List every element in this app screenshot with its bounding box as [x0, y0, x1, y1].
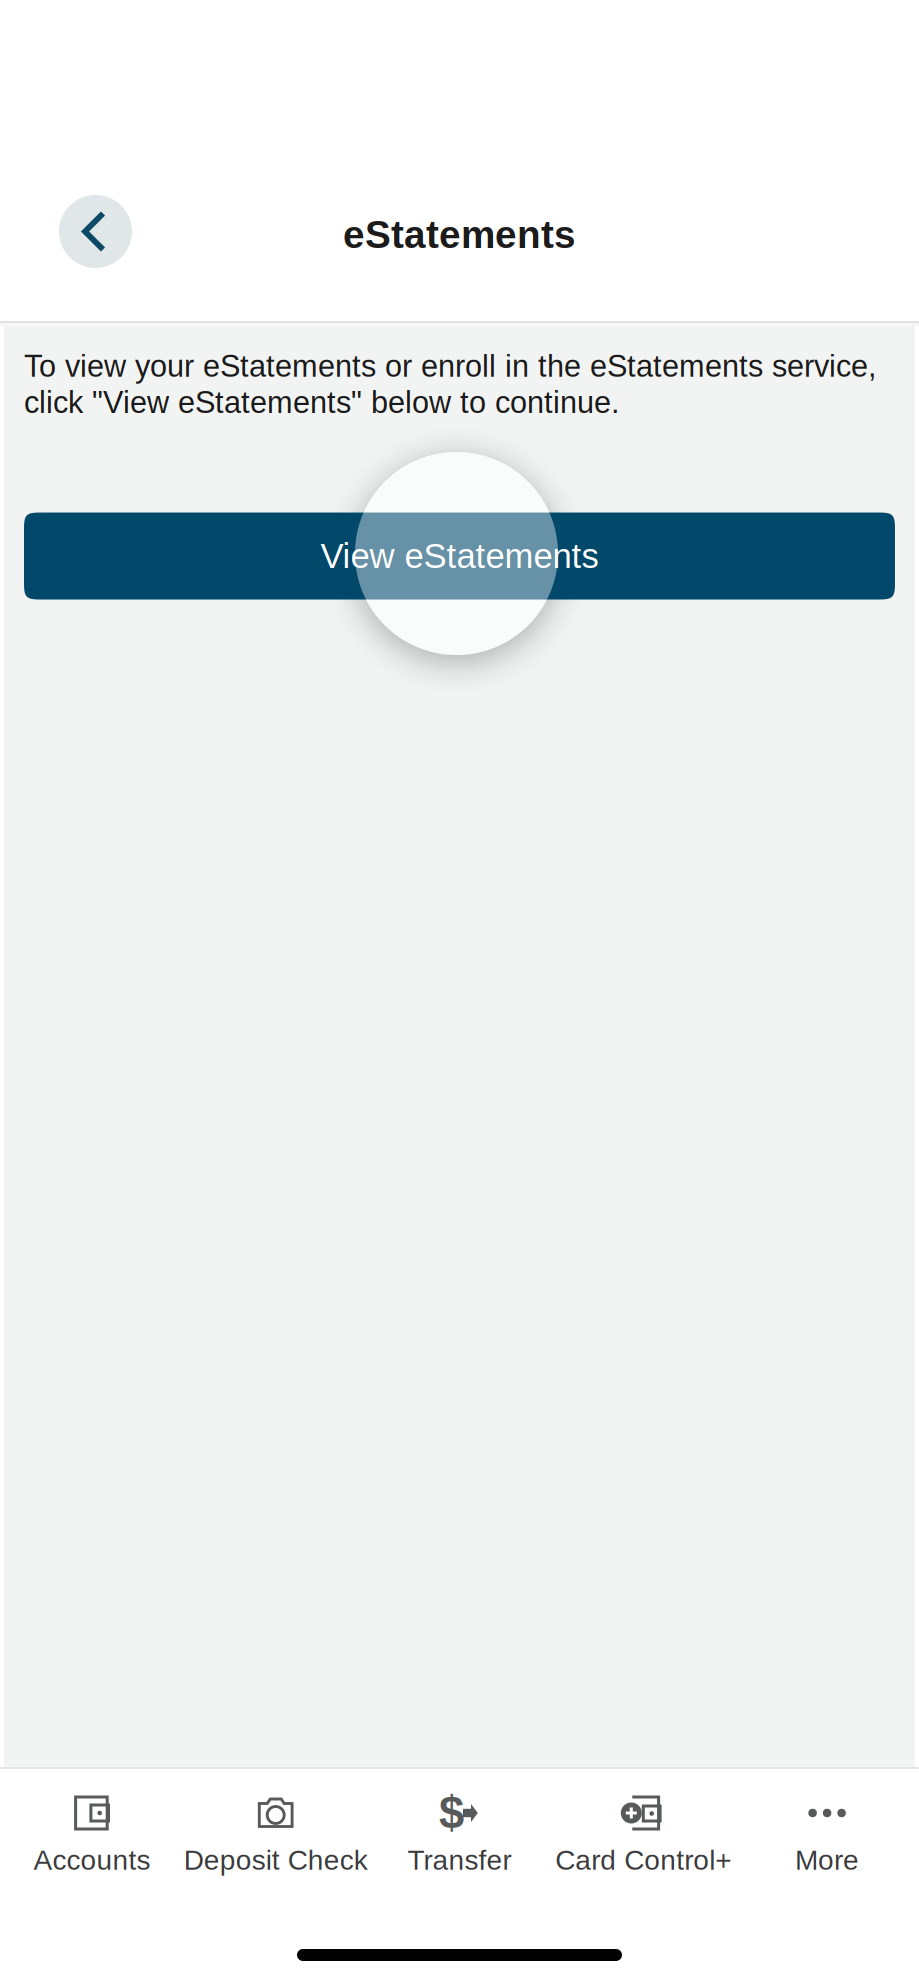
- button[interactable]: Accounts: [0, 1795, 184, 1873]
- staticText: Card Control+: [555, 1844, 731, 1876]
- staticText: Accounts: [33, 1844, 150, 1876]
- button[interactable]: View eStatements: [24, 512, 895, 599]
- staticText: Deposit Check: [184, 1844, 368, 1876]
- button[interactable]: Deposit Check: [184, 1795, 368, 1873]
- button[interactable]: $: [368, 1795, 551, 1873]
- staticText: $: [439, 1788, 464, 1838]
- staticText: View eStatements: [320, 537, 598, 575]
- staticText: Transfer: [407, 1844, 511, 1876]
- staticText: To view your eStatements or enroll in th…: [24, 349, 877, 419]
- button[interactable]: Card Control+: [551, 1795, 735, 1873]
- button[interactable]: Back: [59, 195, 132, 268]
- button[interactable]: More: [735, 1795, 919, 1873]
- staticText: More: [795, 1844, 859, 1876]
- staticText: eStatements: [343, 213, 576, 256]
